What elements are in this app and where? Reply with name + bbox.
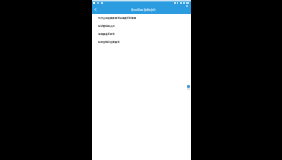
button[interactable]: 怎样修改手机号: [92, 30, 191, 38]
staticText: 忘记密码怎么办: [98, 25, 115, 28]
button[interactable]: 如何注销已注册账号: [92, 38, 191, 46]
button[interactable]: Customer service: [187, 85, 190, 90]
staticText: 忘记密码怎么办: [98, 25, 115, 28]
staticText: 怎样修改手机号: [98, 33, 115, 36]
button[interactable]: Back: [92, 5, 99, 14]
staticText: 怎样修改手机号: [98, 33, 115, 36]
staticText: 常见问题 帮助中心: [131, 8, 156, 12]
staticText: 如何注销已注册账号: [98, 41, 120, 44]
button[interactable]: 为什么说在线客服无法连接不到客服: [92, 14, 191, 22]
staticText: 为什么说在线客服无法连接不到客服: [98, 17, 137, 20]
button[interactable]: 忘记密码怎么办: [92, 22, 191, 30]
staticText: 如何注销已注册账号: [98, 41, 120, 44]
staticText: 为什么说在线客服无法连接不到客服: [98, 17, 137, 20]
